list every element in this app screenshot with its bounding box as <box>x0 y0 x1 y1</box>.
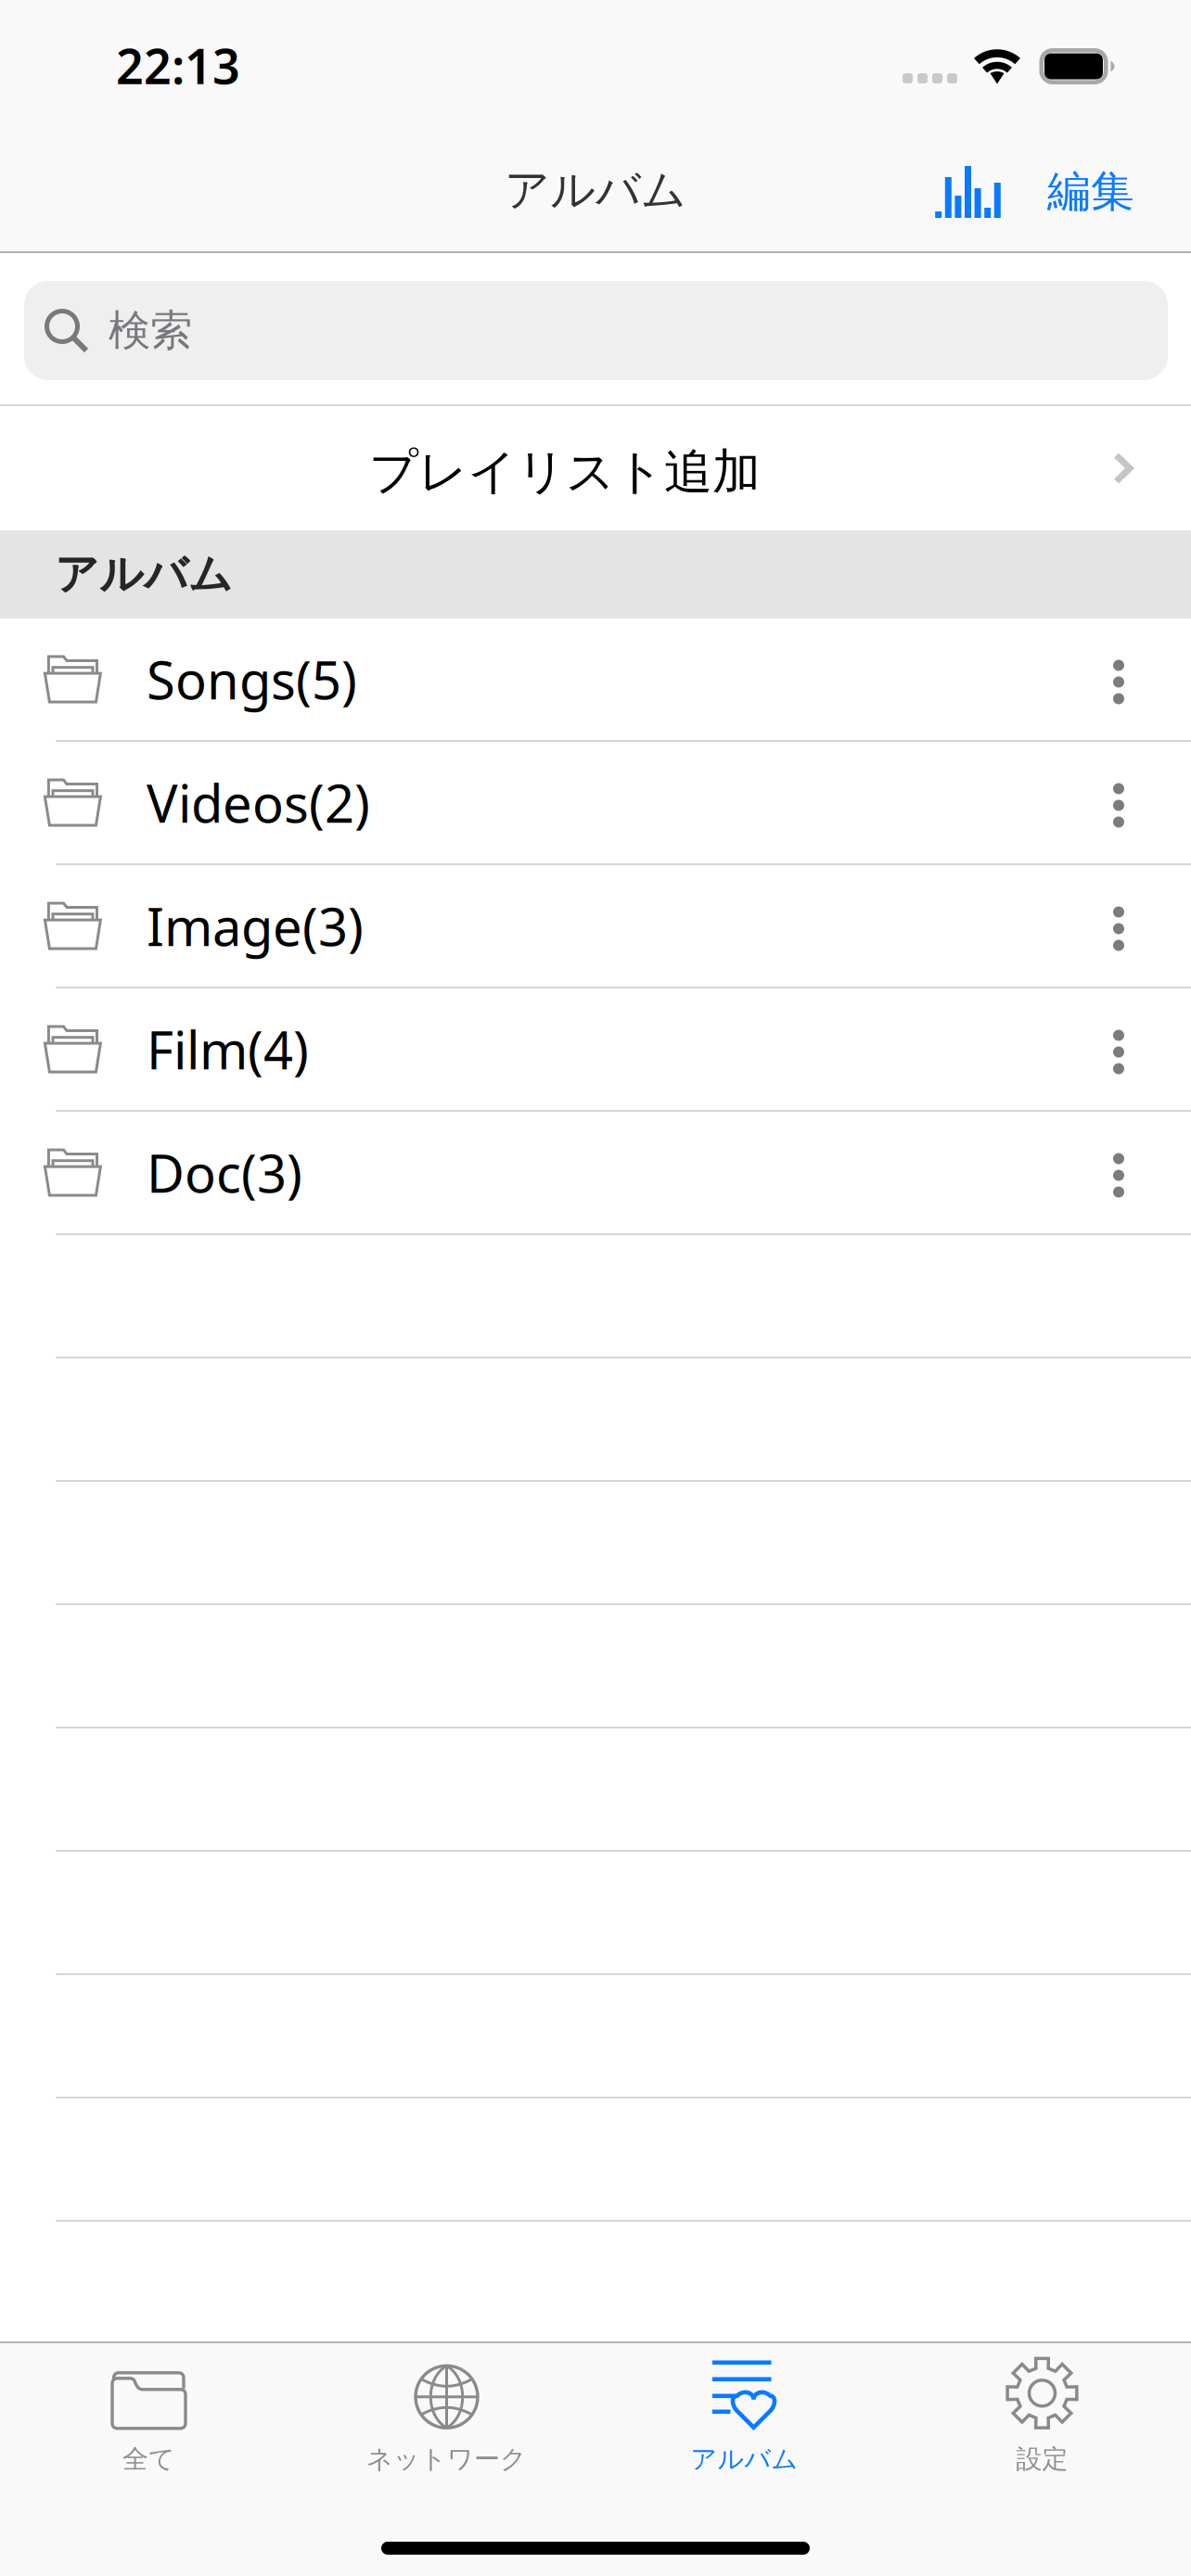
button[interactable]: 編集 <box>1031 148 1151 235</box>
staticText: ネットワーク <box>366 2443 527 2475</box>
button[interactable]: Film(4) <box>0 988 1191 1112</box>
staticText: Videos(2) <box>147 768 370 837</box>
staticText: 検索 <box>109 305 192 356</box>
button[interactable]: ネットワーク <box>298 2356 595 2479</box>
button[interactable]: アルバム <box>595 2356 893 2479</box>
button[interactable]: Songs(5) <box>0 618 1191 742</box>
staticText: アルバム <box>55 548 233 601</box>
button[interactable]: More options for Image(3) <box>1080 875 1191 982</box>
button[interactable]: More options for Videos(2) <box>1080 752 1191 859</box>
button[interactable]: More options for Film(4) <box>1080 998 1191 1106</box>
button[interactable]: More options for Songs(5) <box>1080 628 1191 736</box>
staticText: アルバム <box>691 2443 798 2475</box>
button[interactable]: プレイリスト追加 <box>0 406 1191 530</box>
button[interactable]: 全て <box>0 2356 298 2479</box>
staticText: Image(3) <box>147 891 364 960</box>
staticText: 設定 <box>1016 2443 1068 2475</box>
staticText: Doc(3) <box>147 1138 302 1207</box>
staticText: Film(4) <box>147 1015 309 1084</box>
button[interactable]: Image(3) <box>0 865 1191 988</box>
button[interactable]: Videos(2) <box>0 742 1191 865</box>
button[interactable]: More options for Doc(3) <box>1080 1122 1191 1229</box>
button[interactable]: Doc(3) <box>0 1112 1191 1235</box>
button[interactable]: 検索 <box>24 281 1168 380</box>
staticText: プレイリスト追加 <box>369 442 761 502</box>
staticText: 22:13 <box>116 33 240 97</box>
staticText: アルバム <box>505 163 686 217</box>
staticText: Songs(5) <box>147 645 357 714</box>
button[interactable]: 設定 <box>893 2356 1191 2479</box>
staticText: 編集 <box>1047 165 1134 218</box>
button[interactable]: Equalizer <box>918 149 1018 235</box>
staticText: 全て <box>122 2443 175 2475</box>
